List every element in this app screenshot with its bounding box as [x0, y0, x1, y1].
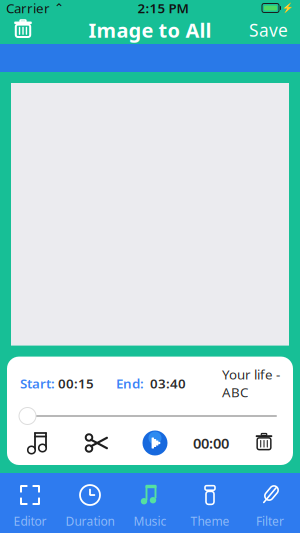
staticText: Theme [190, 513, 229, 529]
staticText: Carrier [6, 0, 50, 17]
button[interactable]: Music [120, 479, 180, 533]
staticText: Save [249, 18, 288, 41]
button[interactable]: Duration [60, 479, 120, 533]
staticText: 2:15 PM [137, 0, 188, 17]
button[interactable]: Filter [240, 479, 300, 533]
staticText: ⌃ [50, 1, 64, 15]
staticText: Filter [256, 513, 284, 529]
button[interactable]: Editor [0, 479, 60, 533]
staticText: Your life - ABC [222, 366, 280, 401]
staticText: Music [133, 513, 166, 529]
staticText: Editor [13, 513, 46, 529]
staticText: ⚡ [282, 3, 294, 13]
staticText: End: [116, 374, 144, 392]
staticText: 00:15 [55, 374, 94, 392]
button[interactable]: Trim [77, 428, 117, 458]
staticText: 00:00 [193, 433, 229, 453]
button[interactable]: Delete [6, 15, 40, 45]
staticText: 03:40 [144, 374, 186, 392]
staticText: Start: [20, 374, 55, 392]
button[interactable]: Delete audio [247, 428, 281, 458]
button[interactable]: Music [19, 428, 59, 458]
staticText: Image to All [88, 17, 211, 43]
button[interactable]: Theme [180, 479, 240, 533]
staticText: Duration [65, 513, 114, 529]
button[interactable]: Play [135, 428, 175, 458]
button[interactable]: Save [243, 15, 294, 45]
